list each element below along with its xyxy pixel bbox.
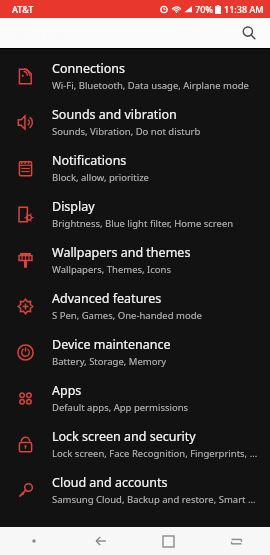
staticText: Cloud and accounts bbox=[52, 474, 168, 491]
button[interactable]: Back bbox=[67, 527, 134, 555]
staticText: Samsung Cloud, Backup and restore, Smart… bbox=[52, 493, 260, 506]
staticText: 70% bbox=[195, 3, 213, 15]
button[interactable]: Advanced features bbox=[0, 283, 270, 329]
button[interactable]: Display bbox=[0, 191, 270, 237]
staticText: Block, allow, prioritize bbox=[52, 171, 149, 184]
staticText: Notifications bbox=[52, 152, 127, 169]
button[interactable]: Lock screen and security bbox=[0, 421, 270, 467]
staticText: 11:38 AM bbox=[224, 3, 264, 15]
staticText: Wallpapers and themes bbox=[52, 244, 191, 261]
staticText: Sounds, Vibration, Do not disturb bbox=[52, 125, 201, 138]
staticText: Brightness, Blue light filter, Home scre… bbox=[52, 217, 234, 230]
staticText: Battery, Storage, Memory bbox=[52, 355, 167, 368]
staticText: Wi-Fi, Bluetooth, Data usage, Airplane m… bbox=[52, 79, 249, 92]
staticText: Lock screen, Face Recognition, Fingerpri… bbox=[52, 447, 260, 460]
button[interactable]: Device maintenance bbox=[0, 329, 270, 375]
staticText: Connections bbox=[52, 60, 125, 77]
button[interactable]: Recents bbox=[202, 527, 270, 555]
button[interactable]: Apps bbox=[0, 375, 270, 421]
staticText: Display bbox=[52, 198, 95, 215]
button[interactable]: Menu bbox=[0, 527, 67, 555]
staticText: AT&T bbox=[12, 3, 34, 15]
button[interactable]: Search bbox=[236, 20, 262, 46]
staticText: Apps bbox=[52, 382, 82, 399]
button[interactable]: Sounds and vibration bbox=[0, 99, 270, 145]
button[interactable]: Wallpapers and themes bbox=[0, 237, 270, 283]
button[interactable]: Connections bbox=[0, 53, 270, 99]
staticText: Device maintenance bbox=[52, 336, 171, 353]
staticText: Sounds and vibration bbox=[52, 106, 177, 123]
staticText: Default apps, App permissions bbox=[52, 401, 189, 414]
button[interactable]: Cloud and accounts bbox=[0, 467, 270, 513]
staticText: Wallpapers, Themes, Icons bbox=[52, 263, 172, 276]
staticText: S Pen, Games, One-handed mode bbox=[52, 309, 202, 322]
button[interactable]: Notifications bbox=[0, 145, 270, 191]
button[interactable]: Home bbox=[134, 527, 202, 555]
staticText: Lock screen and security bbox=[52, 428, 196, 445]
staticText: Advanced features bbox=[52, 290, 162, 307]
